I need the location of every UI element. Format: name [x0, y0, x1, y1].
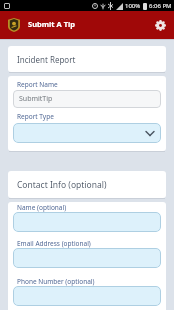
staticText: 6:06 PM [149, 2, 172, 10]
button[interactable]: Incident Report [8, 46, 166, 72]
staticText: 100% [125, 2, 141, 10]
staticText: Report Type [17, 112, 54, 121]
button[interactable] [13, 212, 161, 232]
staticText: Report Name [17, 80, 58, 89]
staticText: SubmitTip [19, 94, 53, 104]
button[interactable] [13, 286, 161, 306]
button[interactable] [13, 123, 161, 143]
staticText: Phone Number (optional) [17, 277, 95, 286]
staticText: Incident Report [17, 54, 76, 65]
button[interactable]: Contact Info (optional) [8, 171, 166, 198]
staticText: Contact Info (optional) [17, 179, 107, 191]
staticText: Email Address (optional) [17, 239, 91, 248]
button[interactable] [146, 11, 174, 39]
staticText: Name (optional) [17, 203, 67, 212]
staticText: Submit A Tip [28, 19, 75, 29]
button[interactable] [13, 248, 161, 268]
button[interactable]: SubmitTip [13, 90, 161, 108]
